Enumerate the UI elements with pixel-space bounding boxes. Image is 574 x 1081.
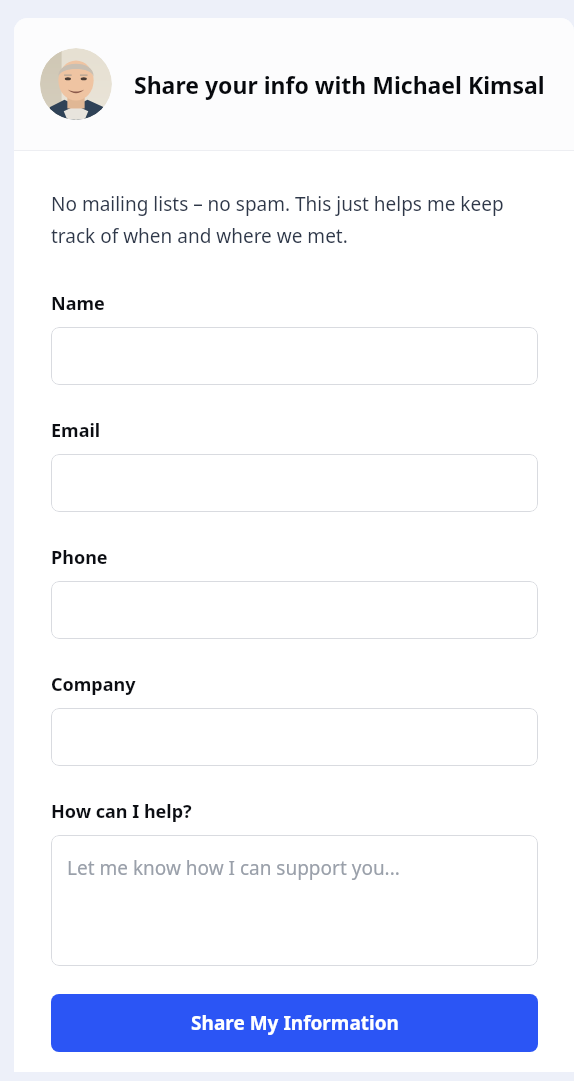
staticText: Let me know how I can support you... bbox=[67, 855, 400, 881]
staticText: Share My Information bbox=[191, 1010, 399, 1036]
staticText: How can I help? bbox=[51, 799, 192, 824]
staticText: No mailing lists – no spam. This just he… bbox=[51, 191, 538, 249]
staticText: Email bbox=[51, 418, 101, 443]
staticText: Share your info with Michael Kimsal bbox=[134, 69, 545, 100]
button[interactable] bbox=[51, 581, 538, 639]
button[interactable]: Let me know how I can support you... bbox=[51, 835, 538, 966]
staticText: Phone bbox=[51, 545, 108, 570]
staticText: Company bbox=[51, 672, 136, 697]
button[interactable]: Share My Information bbox=[51, 994, 538, 1052]
button[interactable] bbox=[51, 454, 538, 512]
button[interactable] bbox=[51, 708, 538, 766]
button[interactable] bbox=[51, 327, 538, 385]
staticText: Name bbox=[51, 291, 105, 316]
